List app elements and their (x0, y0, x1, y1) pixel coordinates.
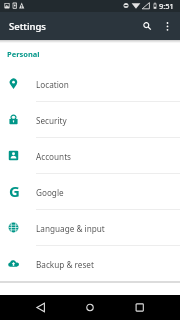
button[interactable]: G (0, 174, 180, 210)
staticText: Accounts (36, 151, 72, 162)
button[interactable]: Security (0, 102, 180, 138)
button[interactable]: Accounts (0, 138, 180, 174)
button[interactable]: Location (0, 66, 180, 102)
staticText: Personal (7, 49, 40, 59)
button[interactable]: Language & input (0, 210, 180, 246)
staticText: Settings (9, 20, 46, 33)
staticText: Backup & reset (36, 259, 94, 270)
button[interactable]: Search (134, 13, 160, 39)
staticText: Language & input (36, 223, 105, 234)
staticText: Security (36, 115, 67, 126)
staticText: 9:51 (159, 1, 174, 11)
staticText: Location (36, 79, 69, 90)
staticText: G (9, 181, 20, 201)
staticText: Google (36, 187, 64, 198)
button[interactable]: More options (155, 14, 180, 39)
button[interactable]: Backup & reset (0, 246, 180, 283)
